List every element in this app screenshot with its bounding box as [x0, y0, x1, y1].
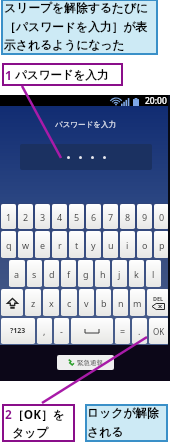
staticText: e	[40, 239, 46, 251]
button[interactable]: 7	[103, 204, 118, 229]
staticText: .	[138, 325, 141, 337]
staticText: x	[49, 297, 54, 309]
button[interactable]: c	[61, 289, 77, 316]
staticText: 1	[5, 67, 12, 83]
button[interactable]: y	[86, 231, 101, 258]
button[interactable]: Space	[71, 318, 113, 344]
button[interactable]: 3	[35, 204, 50, 229]
button[interactable]: Delete	[147, 289, 169, 316]
staticText: w	[22, 239, 30, 251]
button[interactable]	[20, 144, 152, 170]
button[interactable]: r	[52, 231, 67, 258]
button[interactable]: -	[54, 318, 69, 344]
button[interactable]: i	[120, 231, 135, 258]
button[interactable]: u	[103, 231, 118, 258]
staticText: 5	[74, 211, 80, 223]
button[interactable]: e	[35, 231, 50, 258]
staticText: l	[152, 268, 155, 280]
staticText: d	[49, 268, 55, 280]
staticText: 2	[23, 211, 29, 223]
button[interactable]: 9	[137, 204, 152, 229]
staticText: z	[31, 297, 36, 309]
staticText: 9	[142, 211, 148, 223]
button[interactable]: t	[69, 231, 84, 258]
staticText: 緊急通報	[77, 359, 103, 367]
staticText: 3	[40, 211, 46, 223]
button[interactable]: f	[61, 260, 76, 287]
staticText: b	[101, 297, 107, 309]
button[interactable]: d	[44, 260, 59, 287]
staticText: -	[60, 325, 63, 337]
button[interactable]: ,	[37, 318, 52, 344]
button[interactable]: g	[78, 260, 93, 287]
button[interactable]: s	[27, 260, 42, 287]
staticText: c	[67, 297, 72, 309]
button[interactable]: x	[43, 289, 59, 316]
staticText: n	[118, 297, 124, 309]
staticText: u	[108, 239, 114, 251]
staticText: h	[100, 268, 106, 280]
button[interactable]: 緊急通報	[57, 355, 114, 370]
button[interactable]: 6	[86, 204, 101, 229]
staticText: スリープを解除するたびに ［パスワードを入力］が表 示されるようになった	[4, 1, 149, 52]
staticText: DEL	[153, 295, 164, 302]
staticText: a	[14, 268, 20, 280]
button[interactable]: 8	[120, 204, 135, 229]
button[interactable]: 2	[18, 204, 33, 229]
button[interactable]: l	[146, 260, 161, 287]
staticText: g	[83, 268, 89, 280]
button[interactable]: m	[130, 289, 145, 316]
button[interactable]: p	[154, 231, 169, 258]
button[interactable]: スリープを解除するたびに ［パスワードを入力］が表 示されるようになった	[1, 0, 158, 55]
staticText: パスワードを入力	[15, 68, 109, 82]
button[interactable]: 1	[2, 63, 123, 86]
button[interactable]: ?123	[1, 318, 35, 344]
button[interactable]: b	[96, 289, 111, 316]
staticText: o	[142, 239, 148, 251]
staticText: ［OK］を タップ	[12, 406, 65, 440]
button[interactable]: h	[95, 260, 110, 287]
button[interactable]: w	[18, 231, 33, 258]
other: Battery	[133, 98, 139, 106]
staticText: m	[133, 297, 142, 309]
button[interactable]: 5	[69, 204, 84, 229]
button[interactable]: 0	[154, 204, 169, 229]
button[interactable]: 2	[2, 404, 75, 442]
staticText: q	[6, 239, 12, 251]
staticText: ?123	[10, 326, 26, 336]
staticText: 6	[91, 211, 97, 223]
staticText: s	[32, 268, 37, 280]
button[interactable]: .	[132, 318, 147, 344]
button[interactable]: k	[129, 260, 144, 287]
button[interactable]: a	[9, 260, 25, 287]
staticText: y	[91, 239, 96, 251]
staticText: t	[75, 239, 79, 251]
staticText: 20:00	[145, 95, 167, 106]
staticText: ロックが解除 される	[87, 406, 159, 439]
button[interactable]: 1	[1, 204, 16, 229]
button[interactable]: 4	[52, 204, 67, 229]
other: Wi-Fi	[112, 98, 120, 105]
staticText: 1	[6, 211, 12, 223]
button[interactable]: j	[112, 260, 127, 287]
staticText: j	[118, 268, 121, 280]
button[interactable]: o	[137, 231, 152, 258]
other: Signal	[121, 98, 130, 106]
button[interactable]: Shift	[1, 289, 23, 316]
staticText: =	[120, 325, 126, 337]
button[interactable]: OK	[149, 318, 169, 344]
staticText: p	[159, 239, 165, 251]
staticText: 4	[57, 211, 63, 223]
staticText: OK	[153, 326, 165, 337]
staticText: 8	[125, 211, 131, 223]
button[interactable]: n	[113, 289, 128, 316]
staticText: 0	[159, 211, 165, 223]
button[interactable]: q	[1, 231, 16, 258]
staticText: v	[84, 297, 89, 309]
staticText: 7	[108, 211, 114, 223]
button[interactable]: =	[115, 318, 130, 344]
button[interactable]: z	[25, 289, 41, 316]
button[interactable]: v	[79, 289, 94, 316]
button[interactable]: ロックが解除 される	[85, 404, 168, 442]
staticText: f	[67, 268, 71, 280]
